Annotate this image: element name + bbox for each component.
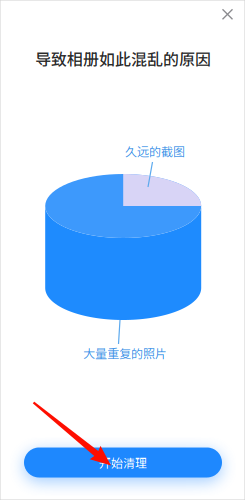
staticText: 久远的截图 xyxy=(125,142,185,160)
button[interactable]: Close xyxy=(208,0,245,33)
staticText: 导致相册如此混乱的原因 xyxy=(35,47,211,70)
staticText: 大量重复的照片 xyxy=(83,344,167,362)
staticText: 开始清理 xyxy=(99,454,147,471)
button[interactable]: 开始清理 xyxy=(24,447,222,477)
